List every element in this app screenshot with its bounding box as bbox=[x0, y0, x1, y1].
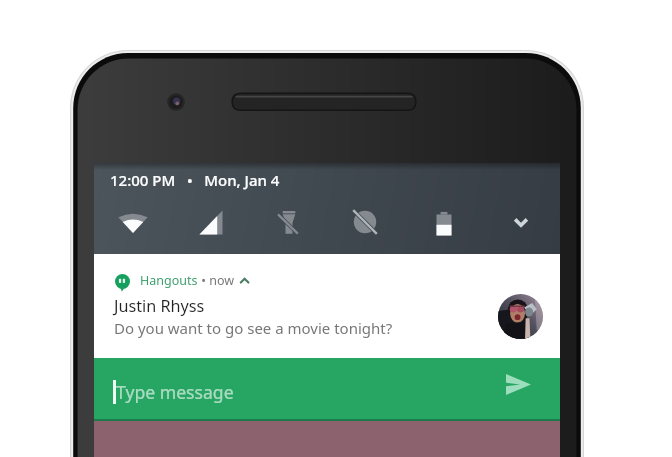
staticText: Type message bbox=[116, 380, 234, 404]
staticText: • now bbox=[198, 272, 235, 289]
staticText: Do you want to go see a movie tonight? bbox=[114, 318, 393, 338]
button[interactable]: Type message bbox=[94, 358, 560, 421]
button[interactable]: Flashlight off bbox=[269, 202, 309, 242]
button[interactable]: Battery bbox=[424, 202, 464, 242]
button[interactable]: Do not disturb bbox=[345, 202, 385, 242]
button[interactable]: Send bbox=[506, 374, 531, 395]
staticText: 12:00 PM • Mon, Jan 4 bbox=[110, 170, 280, 190]
button[interactable]: Expand quick settings bbox=[501, 202, 541, 242]
button[interactable]: Hangouts bbox=[94, 254, 560, 358]
button[interactable]: Wi-Fi bbox=[113, 202, 153, 242]
staticText: Hangouts bbox=[140, 272, 198, 289]
button[interactable]: Justin Rhyss avatar bbox=[498, 294, 543, 339]
button[interactable]: Mobile signal bbox=[191, 202, 231, 242]
staticText: Justin Rhyss bbox=[114, 295, 205, 317]
